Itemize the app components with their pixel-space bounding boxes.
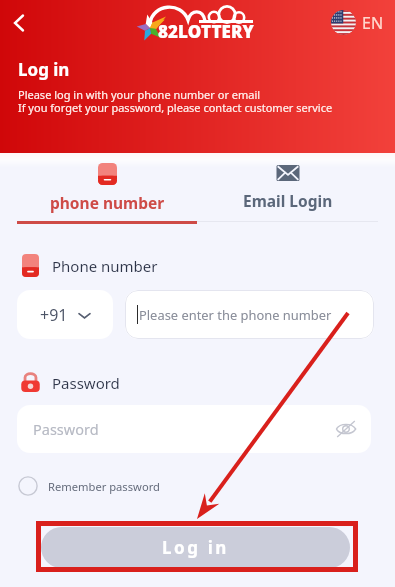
button[interactable]: Email Login [197, 162, 378, 222]
staticText: EN [362, 12, 384, 34]
staticText: Email Login [243, 190, 333, 211]
button[interactable]: EN [327, 6, 388, 39]
button[interactable]: Password [17, 405, 371, 453]
button[interactable]: phone number [17, 162, 197, 224]
staticText: Please log in with your phone number or … [18, 87, 261, 102]
staticText: Log in [162, 536, 230, 559]
button[interactable]: Show password [335, 418, 357, 440]
staticText: Log in [18, 58, 70, 81]
button[interactable]: Back [5, 9, 33, 37]
button[interactable]: +91 [17, 290, 113, 339]
button[interactable]: Remember password [17, 475, 161, 497]
staticText: Remember password [48, 479, 160, 494]
staticText: phone number [50, 192, 165, 213]
staticText: If you forget your password, please cont… [18, 100, 333, 115]
staticText: Password [33, 419, 99, 439]
staticText: Please enter the phone number [139, 306, 332, 324]
staticText: Phone number [52, 256, 158, 276]
button[interactable]: Please enter the phone number [125, 290, 374, 339]
button[interactable]: Log in [41, 527, 350, 568]
staticText: +91 [40, 304, 68, 326]
staticText: 82LOTTERY [158, 20, 254, 43]
staticText: Password [52, 373, 120, 393]
